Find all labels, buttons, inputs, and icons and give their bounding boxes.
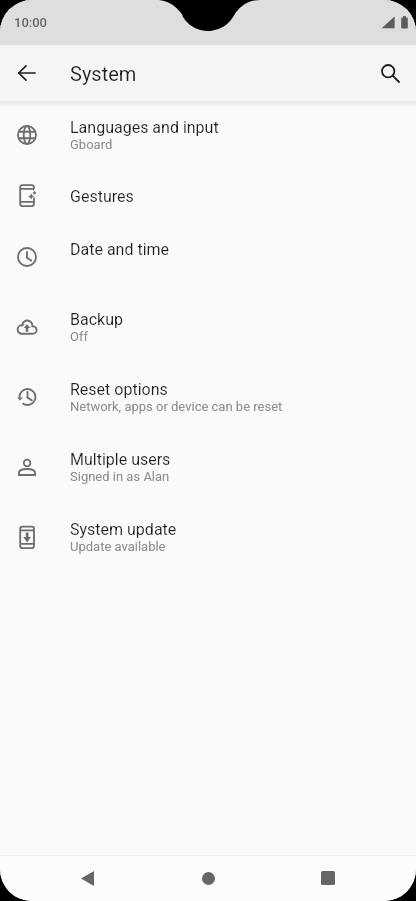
staticText: Reset options [70, 380, 168, 399]
staticText: Gboard [70, 137, 113, 152]
staticText: Update available [70, 539, 166, 554]
staticText: Network, apps or device can be reset [70, 399, 283, 414]
staticText: System [70, 62, 137, 85]
staticText: Multiple users [70, 450, 171, 469]
staticText: Off [70, 329, 88, 344]
button[interactable]: Recents [305, 855, 351, 901]
button[interactable]: Gestures [0, 170, 416, 222]
staticText: Signed in as Alan [70, 469, 170, 484]
staticText: 10:00 [14, 15, 47, 30]
button[interactable]: Home [185, 855, 231, 901]
staticText: Backup [70, 310, 123, 329]
staticText: Gestures [70, 187, 134, 206]
button[interactable]: Back [7, 53, 47, 93]
button[interactable]: System update [0, 502, 416, 572]
button[interactable]: Languages and input [0, 100, 416, 170]
staticText: Languages and input [70, 118, 219, 137]
button[interactable]: Multiple users [0, 432, 416, 502]
staticText: Date and time [70, 240, 170, 259]
staticText: System update [70, 520, 177, 539]
button[interactable]: Search [370, 53, 410, 93]
button[interactable]: Backup [0, 292, 416, 362]
button[interactable]: Reset options [0, 362, 416, 432]
button[interactable]: Date and time [0, 222, 416, 292]
button[interactable]: Back [64, 855, 110, 901]
